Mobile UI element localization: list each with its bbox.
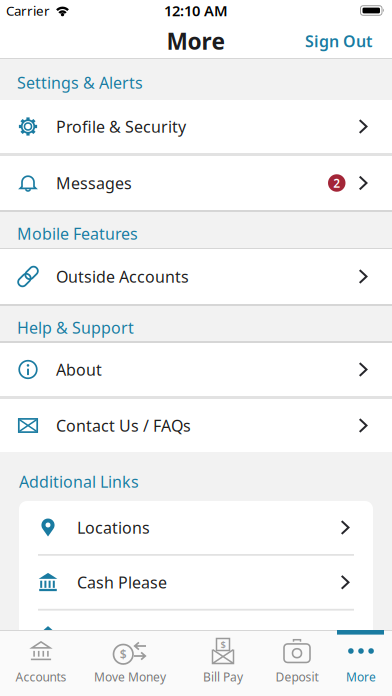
staticText: Sign Out	[305, 30, 372, 52]
button[interactable]: Deposit	[254, 633, 340, 696]
button[interactable]: Cash Please	[19, 556, 373, 609]
staticText: Help & Support	[17, 317, 134, 338]
button[interactable]: Locations	[19, 501, 373, 554]
button[interactable]: Profile & Security	[0, 100, 392, 153]
button[interactable]: More	[318, 633, 392, 696]
button[interactable]: Look for Savings	[19, 611, 373, 664]
staticText: Additional Links	[19, 471, 139, 492]
staticText: Profile & Security	[56, 116, 186, 137]
staticText: Bill Pay	[203, 669, 243, 685]
staticText: More	[166, 26, 225, 56]
staticText: $	[120, 646, 127, 662]
button[interactable]: $	[180, 633, 266, 696]
staticText: Mobile Features	[17, 223, 138, 244]
staticText: 2	[333, 175, 340, 191]
staticText: Look for Savings	[77, 626, 203, 648]
staticText: $	[220, 638, 225, 651]
staticText: Carrier	[6, 2, 50, 19]
button[interactable]: $	[87, 633, 173, 696]
staticText: 12:10 AM	[164, 1, 228, 20]
button[interactable]: About	[0, 343, 392, 396]
button[interactable]: Accounts	[0, 633, 84, 696]
button[interactable]: Contact Us / FAQs	[0, 399, 392, 452]
staticText: Contact Us / FAQs	[56, 415, 191, 436]
staticText: About	[56, 359, 102, 380]
staticText: More	[346, 669, 376, 685]
staticText: Deposit	[275, 669, 318, 685]
staticText: Cash Please	[77, 572, 167, 593]
staticText: Move Money	[94, 669, 166, 685]
staticText: Settings & Alerts	[17, 72, 143, 93]
staticText: Accounts	[15, 669, 66, 685]
button[interactable]: Messages	[0, 156, 392, 210]
button[interactable]: Sign Out	[305, 30, 372, 52]
staticText: Outside Accounts	[56, 266, 189, 287]
staticText: Locations	[77, 517, 150, 538]
staticText: Messages	[56, 172, 132, 194]
button[interactable]: Outside Accounts	[0, 249, 392, 304]
